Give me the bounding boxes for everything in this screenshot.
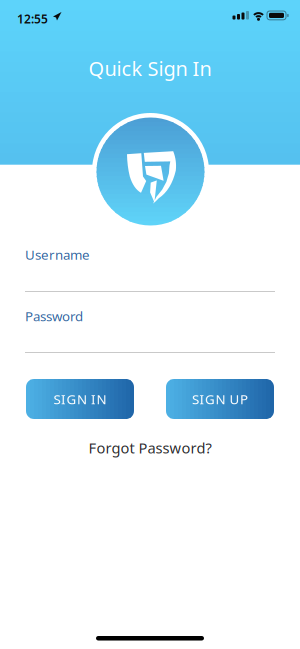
staticText: SIGN UP	[192, 390, 248, 408]
staticText: Quick Sign In	[88, 55, 211, 82]
staticText: SIGN IN	[53, 390, 106, 408]
button[interactable]: Forgot Password?	[88, 438, 211, 457]
button[interactable]: SIGN IN	[26, 379, 134, 419]
staticText: Username	[25, 246, 90, 263]
staticText: Password	[25, 307, 83, 325]
button[interactable]: SIGN UP	[166, 379, 274, 419]
button[interactable]: Username	[25, 246, 275, 292]
staticText: Forgot Password?	[88, 438, 211, 457]
staticText: 12:55	[17, 11, 48, 27]
button[interactable]: Password	[25, 307, 275, 353]
